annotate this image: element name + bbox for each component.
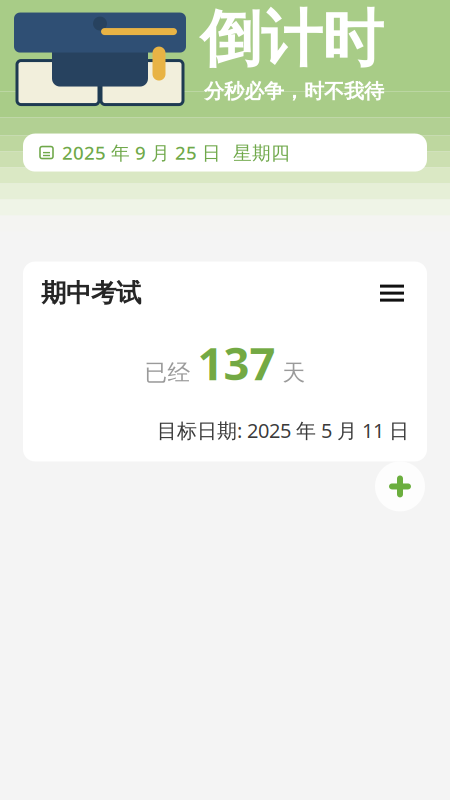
staticText: 137	[197, 333, 275, 393]
staticText: 分秒必争，时不我待	[204, 79, 384, 103]
button[interactable]: 2025 年 9 月 25 日 星期四	[23, 134, 427, 172]
staticText: 已经	[144, 359, 190, 387]
staticText: 倒计时	[200, 2, 383, 77]
staticText: 期中考试	[41, 278, 141, 309]
button[interactable]: Reorder	[375, 280, 409, 306]
staticText: 目标日期: 2025 年 5 月 11 日	[157, 417, 409, 443]
button[interactable]: Add countdown	[375, 461, 425, 511]
staticText: 2025 年 9 月 25 日 星期四	[62, 140, 290, 165]
staticText: 天	[282, 359, 305, 387]
